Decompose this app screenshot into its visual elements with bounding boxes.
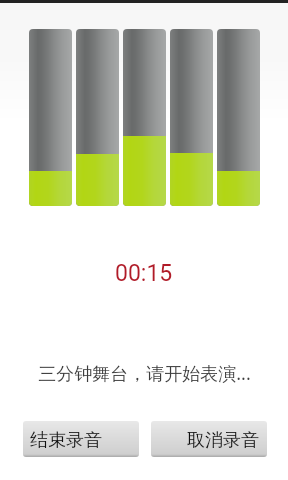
staticText: 结束录音 [30, 429, 102, 452]
button[interactable]: 结束录音 [23, 421, 139, 457]
button[interactable]: 取消录音 [151, 421, 267, 457]
staticText: 三分钟舞台，请开始表演... [38, 361, 251, 386]
staticText: 取消录音 [187, 429, 259, 452]
staticText: 00:15 [115, 260, 173, 287]
